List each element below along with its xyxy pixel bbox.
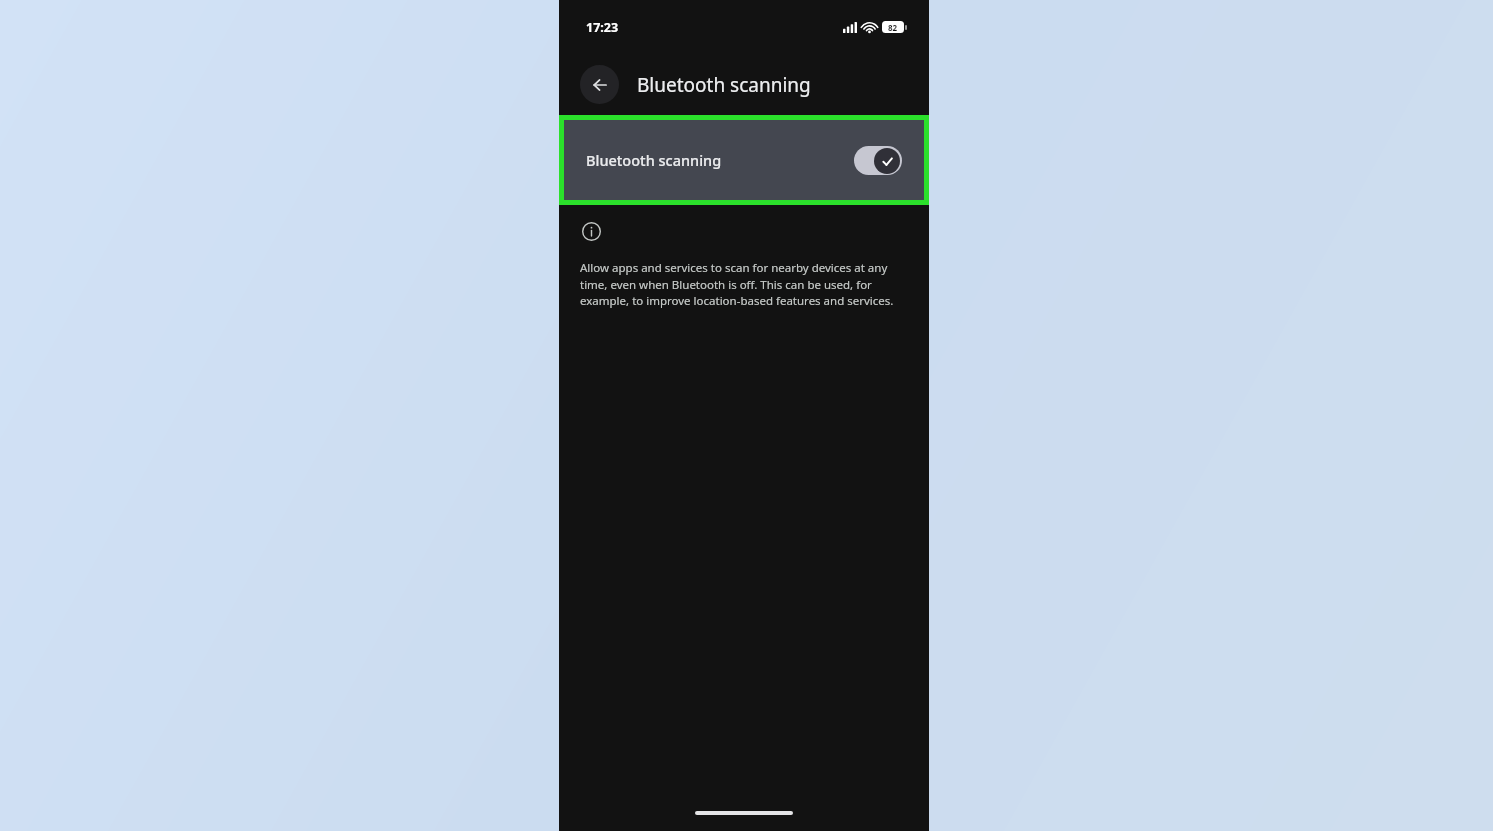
staticText: Allow apps and services to scan for near… — [580, 260, 897, 308]
staticText: Bluetooth scanning — [637, 72, 811, 98]
staticText: 82 — [888, 22, 898, 33]
button[interactable]: Back — [580, 65, 619, 104]
staticText: 17:23 — [586, 19, 619, 36]
staticText: Bluetooth scanning — [586, 150, 722, 170]
button[interactable]: Bluetooth scanning — [564, 120, 924, 200]
button[interactable]: Bluetooth scanning toggle, on — [854, 146, 902, 175]
